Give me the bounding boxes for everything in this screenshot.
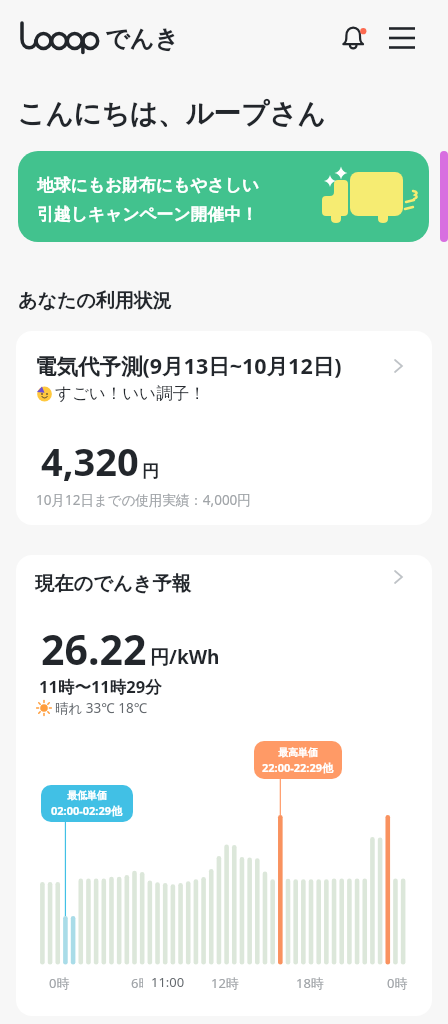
button[interactable]: 電気代予測(9月13日~10月12日) [16,331,432,525]
other: Open [387,566,409,588]
staticText: 12時 [211,974,239,992]
staticText: 11時〜11時29分 [39,675,162,698]
staticText: 0時 [49,974,70,992]
button[interactable] [440,151,448,242]
button[interactable]: Menu [383,19,421,57]
button[interactable]: 地球にもお財布にもやさしい [18,151,429,242]
staticText: 地球にもお財布にもやさしい [37,175,259,196]
staticText: 6時 [131,974,152,992]
staticText: 晴れ 33℃ 18℃ [55,699,148,717]
staticText: 円/kWh [150,644,220,670]
staticText: 4,320 [41,435,139,487]
staticText: 02:00-02:29他 [51,803,123,818]
button[interactable]: でんき [20,21,110,55]
staticText: 引越しキャンペーン開催中！ [37,204,258,225]
staticText: 最低単価 [67,789,107,802]
staticText: こんにちは、ループさん [17,97,326,132]
staticText: 0時 [387,974,408,992]
staticText: あなたの利用状況 [18,289,172,313]
button[interactable]: Notifications [336,19,374,57]
staticText: 18時 [296,974,324,992]
staticText: 11:00 [151,973,185,991]
staticText: 電気代予測(9月13日~10月12日) [35,351,342,380]
staticText: 10月12日までの使用実績：4,000円 [36,491,251,509]
staticText: 現在のでんき予報 [35,571,192,595]
staticText: 最高単価 [278,746,318,759]
staticText: でんき [105,24,179,54]
staticText: 26.22 [41,621,147,677]
staticText: 円 [142,461,159,482]
button[interactable]: 現在のでんき予報 [16,555,432,611]
staticText: 22:00-22:29他 [262,760,334,775]
other: Open [387,355,409,377]
staticText: すごい！いい調子！ [55,383,206,404]
